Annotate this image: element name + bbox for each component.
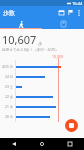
button[interactable]: Home bbox=[28, 138, 56, 150]
button[interactable]: Start activity bbox=[65, 119, 78, 132]
button[interactable]: 20 水 bbox=[0, 112, 84, 122]
button[interactable]: 23 土 bbox=[0, 82, 84, 92]
staticText: 22 金 bbox=[5, 94, 13, 99]
staticText: 20 水 bbox=[5, 114, 13, 119]
staticText: 10,607 bbox=[2, 32, 37, 47]
button[interactable]: Steps tab bbox=[0, 19, 42, 29]
staticText: 4/25 月 bbox=[1, 64, 13, 69]
staticText: 目標まであと0歩！（本日・4/25） bbox=[2, 47, 59, 52]
button[interactable]: Recents bbox=[56, 138, 84, 150]
staticText: 10,000 bbox=[52, 54, 64, 59]
button[interactable]: 22 金 bbox=[0, 92, 84, 102]
button[interactable]: 21 木 bbox=[0, 102, 84, 112]
staticText: 歩 bbox=[38, 41, 42, 46]
staticText: 歩数 bbox=[3, 9, 15, 17]
button[interactable]: Back bbox=[0, 138, 28, 150]
staticText: 23 土 bbox=[5, 84, 13, 89]
button[interactable]: 4/25 月 bbox=[0, 62, 84, 72]
staticText: 24 日 bbox=[5, 74, 13, 79]
staticText: 21 木 bbox=[5, 104, 13, 109]
button[interactable]: Calendar bbox=[57, 8, 66, 17]
button[interactable]: Goal bbox=[66, 8, 75, 17]
button[interactable]: Weight tab bbox=[42, 19, 84, 29]
staticText: 16:44 bbox=[72, 1, 83, 6]
button[interactable]: 24 日 bbox=[0, 72, 84, 82]
button[interactable]: More options bbox=[75, 9, 83, 17]
